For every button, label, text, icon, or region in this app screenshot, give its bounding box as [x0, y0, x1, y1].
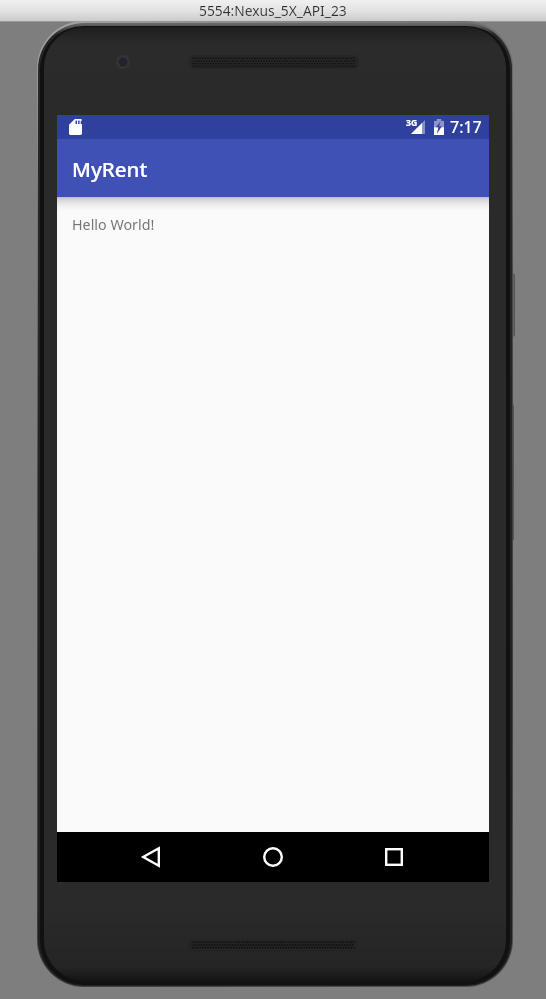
- button[interactable]: Recent apps: [362, 832, 426, 882]
- staticText: 7:17: [450, 116, 482, 138]
- staticText: Hello World!: [72, 215, 155, 234]
- staticText: MyRent: [72, 155, 148, 183]
- button[interactable]: Home: [241, 832, 305, 882]
- staticText: 5554:Nexus_5X_API_23: [199, 1, 347, 20]
- staticText: 3G: [406, 117, 418, 129]
- button[interactable]: MyRent: [57, 139, 489, 197]
- button[interactable]: Back: [119, 832, 183, 882]
